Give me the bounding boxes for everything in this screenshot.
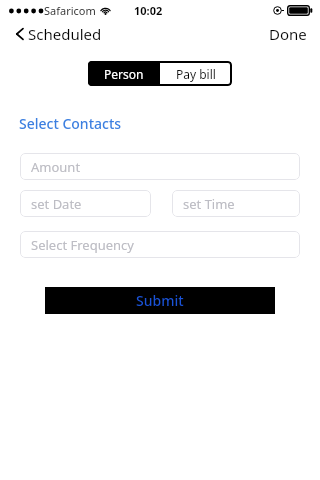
staticText: Scheduled [28,24,102,44]
staticText: Person [104,66,144,82]
button[interactable]: Select Frequency [20,231,300,258]
button[interactable]: Pay bill [160,61,232,86]
staticText: Select Frequency [31,236,134,254]
staticText: Submit [136,291,184,310]
staticText: Select Contacts [19,114,122,133]
staticText: set Time [183,195,235,213]
button[interactable]: Submit [45,287,275,314]
staticText: Pay bill [176,66,216,82]
button[interactable]: Scheduled [10,21,108,47]
button[interactable]: Done [265,21,311,47]
button[interactable]: set Date [20,190,151,217]
staticText: 10:02 [134,3,163,18]
staticText: Safaricom [44,3,96,18]
button[interactable]: Select Contacts [19,112,122,135]
button[interactable]: Person [88,61,160,86]
staticText: Amount [31,158,81,176]
staticText: set Date [31,195,82,213]
button[interactable]: Amount [20,153,300,180]
button[interactable]: set Time [172,190,300,217]
staticText: Done [269,24,307,44]
